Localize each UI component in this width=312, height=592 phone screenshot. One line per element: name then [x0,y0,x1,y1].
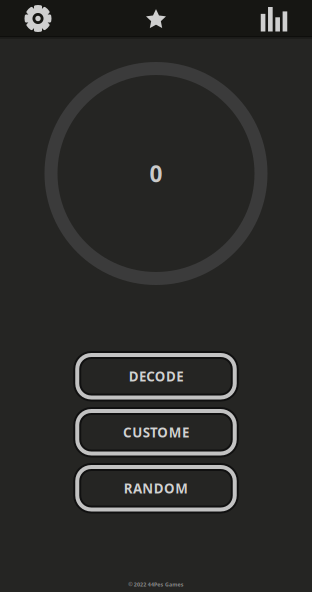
staticText: RANDOM [124,479,188,497]
button[interactable]: RANDOM [77,467,235,509]
button[interactable]: DECODE [77,355,235,397]
staticText: 0 [149,158,162,188]
staticText: © 2022 44Pes Games [128,581,184,588]
button[interactable]: Favourites [118,0,194,36]
staticText: CUSTOME [123,423,189,441]
staticText: DECODE [129,367,183,385]
button[interactable]: CUSTOME [77,411,235,453]
button[interactable]: Statistics [236,0,312,36]
button[interactable]: Settings [0,0,76,36]
